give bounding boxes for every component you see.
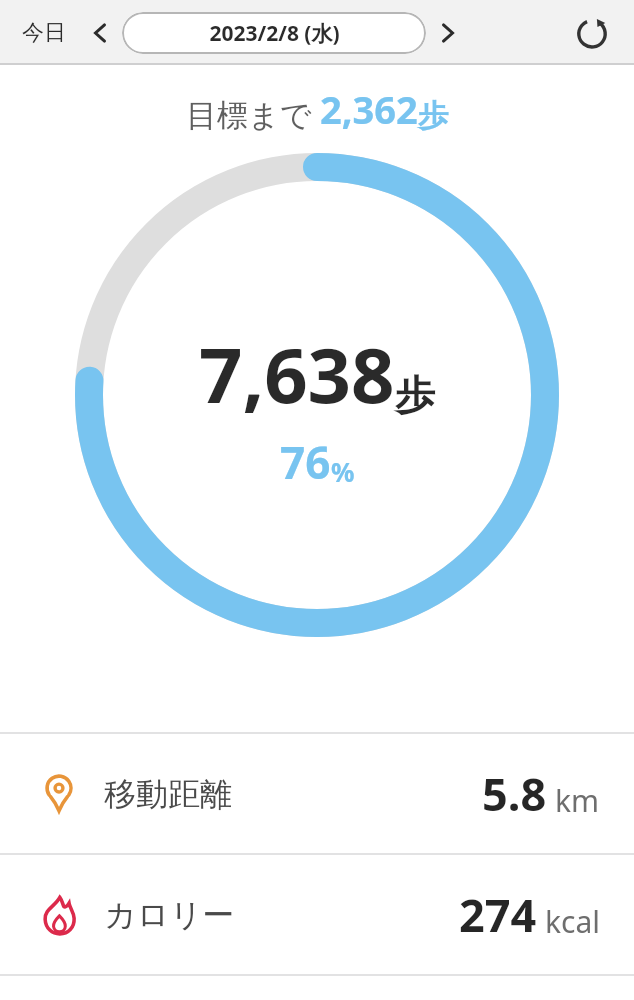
button[interactable]: 今日 — [0, 11, 78, 55]
other: Distance — [36, 771, 82, 817]
button[interactable]: Distance — [0, 734, 634, 853]
staticText: 歩 — [395, 370, 435, 420]
staticText: kcal — [545, 901, 600, 942]
staticText: 76 — [280, 432, 331, 492]
other: Calories — [36, 892, 82, 938]
button[interactable]: Previous day — [78, 11, 122, 55]
button[interactable]: Calories — [0, 855, 634, 974]
staticText: 目標まで — [186, 93, 320, 135]
staticText: 2,362 — [320, 83, 418, 135]
staticText: 歩 — [418, 97, 448, 135]
staticText: % — [331, 454, 355, 489]
staticText: 今日 — [22, 19, 66, 47]
staticText: 2023/2/8 (水) — [209, 19, 340, 48]
staticText: 274 — [459, 884, 537, 945]
staticText: 5.8 — [482, 763, 547, 824]
button[interactable]: Refresh — [566, 7, 618, 59]
staticText: km — [555, 780, 600, 821]
staticText: カロリー — [104, 895, 235, 935]
staticText: 移動距離 — [104, 774, 232, 814]
button[interactable]: Next day — [426, 11, 470, 55]
staticText: 7,638 — [199, 322, 395, 426]
button[interactable]: 2023/2/8 (水) — [122, 12, 426, 54]
